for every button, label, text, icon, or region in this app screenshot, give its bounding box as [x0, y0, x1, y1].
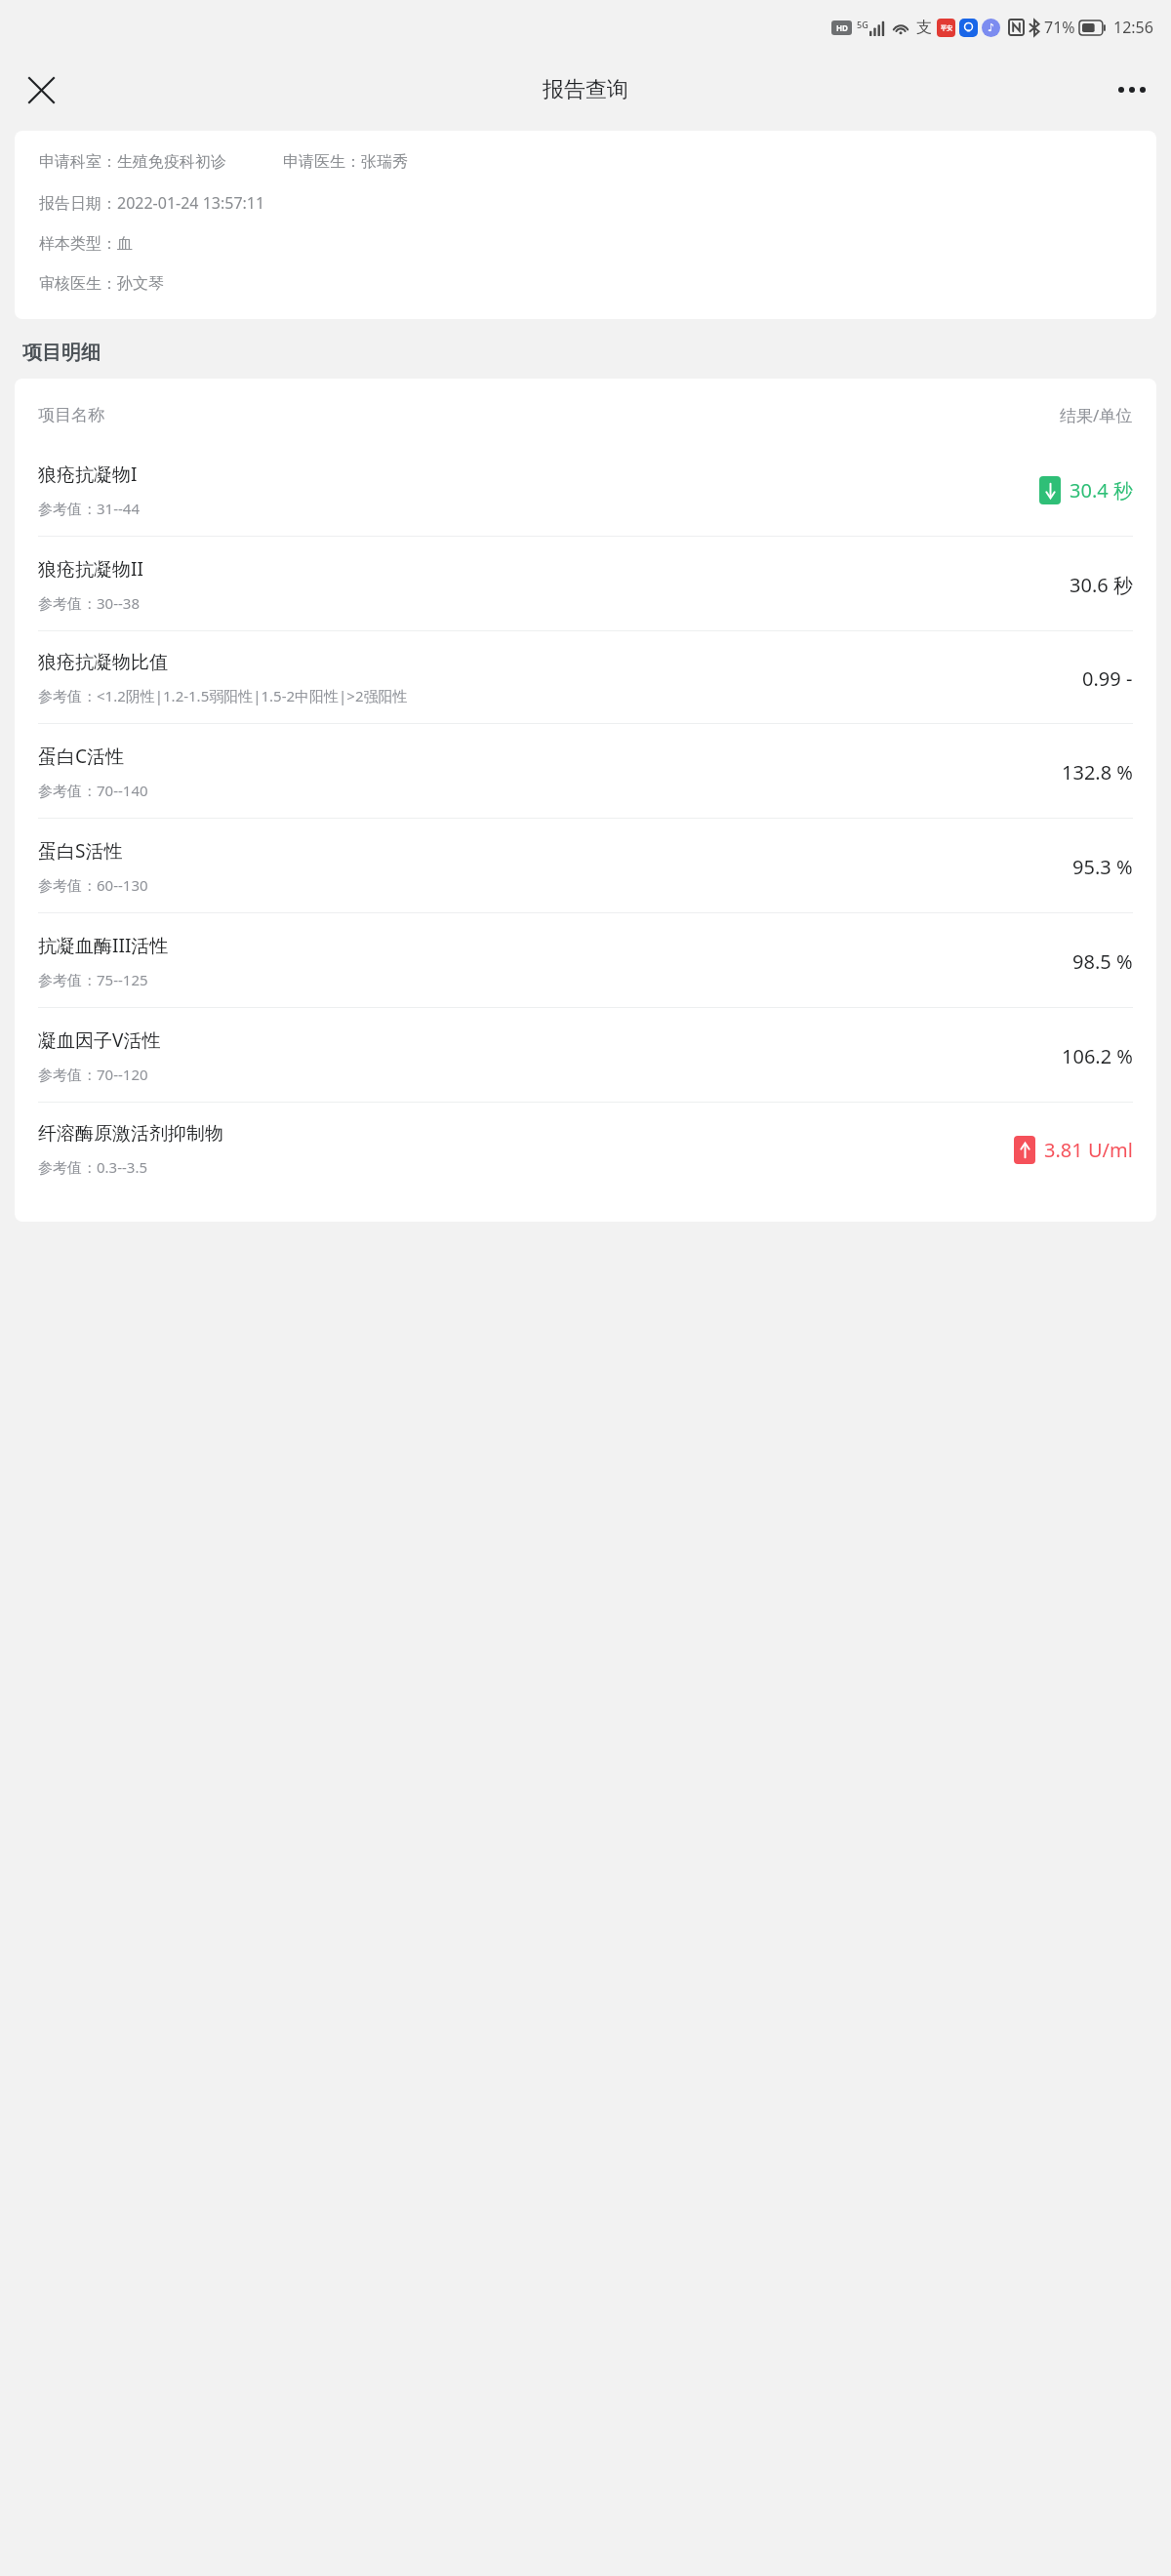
staticText: 71% — [1044, 17, 1075, 38]
button[interactable]: 狼疮抗凝物比值 — [15, 631, 1156, 723]
staticText: 30.6 秒 — [1070, 572, 1133, 598]
staticText: 申请医生：张瑞秀 — [283, 152, 408, 172]
staticText: 30.4 秒 — [1070, 477, 1133, 503]
staticText: 样本类型：血 — [39, 234, 133, 254]
staticText: 参考值：31--44 — [38, 499, 140, 518]
button[interactable]: 狼疮抗凝物I — [15, 442, 1156, 536]
staticText: 狼疮抗凝物II — [38, 556, 143, 582]
staticText: 95.3 % — [1072, 854, 1133, 880]
button[interactable]: 抗凝血酶III活性 — [15, 913, 1156, 1007]
staticText: 申请科室：生殖免疫科初诊 — [39, 152, 226, 172]
staticText: 参考值：0.3--3.5 — [38, 1157, 148, 1177]
staticText: 报告查询 — [543, 76, 628, 103]
button[interactable]: More options — [1105, 62, 1159, 117]
staticText: 12:56 — [1113, 17, 1153, 38]
staticText: 132.8 % — [1062, 759, 1133, 785]
button[interactable]: Close — [14, 62, 68, 117]
staticText: 凝血因子V活性 — [38, 1027, 161, 1053]
staticText: 0.99 - — [1082, 665, 1133, 692]
staticText: HD — [836, 22, 848, 33]
staticText: 参考值：<1.2阴性|1.2-1.5弱阳性|1.5-2中阳性|>2强阳性 — [38, 686, 408, 705]
staticText: 平安 — [941, 24, 952, 32]
staticText: 蛋白C活性 — [38, 744, 125, 769]
staticText: 蛋白S活性 — [38, 838, 123, 864]
staticText: 参考值：30--38 — [38, 593, 140, 613]
button[interactable]: 狼疮抗凝物II — [15, 537, 1156, 630]
staticText: 106.2 % — [1062, 1043, 1133, 1069]
staticText: 报告日期：2022-01-24 13:57:11 — [39, 192, 265, 214]
button[interactable]: 蛋白S活性 — [15, 819, 1156, 912]
staticText: 纤溶酶原激活剂抑制物 — [38, 1122, 223, 1146]
staticText: 项目名称 — [38, 405, 104, 425]
staticText: 参考值：75--125 — [38, 970, 148, 989]
staticText: ♪ — [988, 21, 995, 34]
staticText: 参考值：70--120 — [38, 1065, 148, 1084]
button[interactable]: 凝血因子V活性 — [15, 1008, 1156, 1102]
staticText: 抗凝血酶III活性 — [38, 933, 169, 958]
staticText: 3.81 U/ml — [1044, 1137, 1133, 1163]
staticText: 参考值：70--140 — [38, 781, 148, 800]
staticText: 审核医生：孙文琴 — [39, 274, 164, 294]
staticText: 结果/单位 — [1060, 404, 1133, 426]
staticText: 参考值：60--130 — [38, 875, 148, 895]
staticText: 狼疮抗凝物I — [38, 462, 138, 487]
staticText: 5G — [857, 19, 868, 30]
staticText: 狼疮抗凝物比值 — [38, 651, 168, 674]
button[interactable]: 蛋白C活性 — [15, 724, 1156, 818]
staticText: 支 — [916, 18, 932, 37]
button[interactable]: 纤溶酶原激活剂抑制物 — [15, 1103, 1156, 1194]
staticText: 项目明细 — [22, 341, 101, 365]
staticText: 98.5 % — [1072, 948, 1133, 975]
